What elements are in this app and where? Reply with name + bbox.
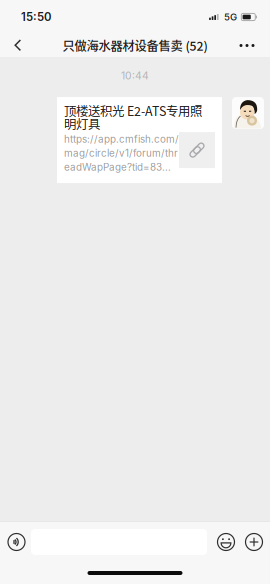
staticText: mag/circle/v1/forum/thr xyxy=(64,147,178,159)
button[interactable]: Emoji xyxy=(212,522,240,562)
button[interactable]: More options xyxy=(240,522,268,562)
staticText: 只做海水器材设备售卖 (52) xyxy=(62,37,207,54)
staticText: 5G xyxy=(224,11,237,23)
staticText: 顶楼送积光 E2-ATS专用照 xyxy=(64,102,202,120)
button[interactable]: Voice message xyxy=(3,522,30,562)
staticText: https://app.cmfish.com/ xyxy=(64,133,179,145)
staticText: 10:44 xyxy=(121,69,149,82)
button[interactable]: More xyxy=(232,34,262,57)
button[interactable]: Back xyxy=(3,34,33,57)
button[interactable]: 顶楼送积光 E2-ATS专用照 xyxy=(57,97,222,183)
staticText: 明灯具 xyxy=(64,115,100,133)
staticText: 15:50 xyxy=(21,10,51,24)
staticText: eadWapPage?tid=83... xyxy=(64,161,171,173)
